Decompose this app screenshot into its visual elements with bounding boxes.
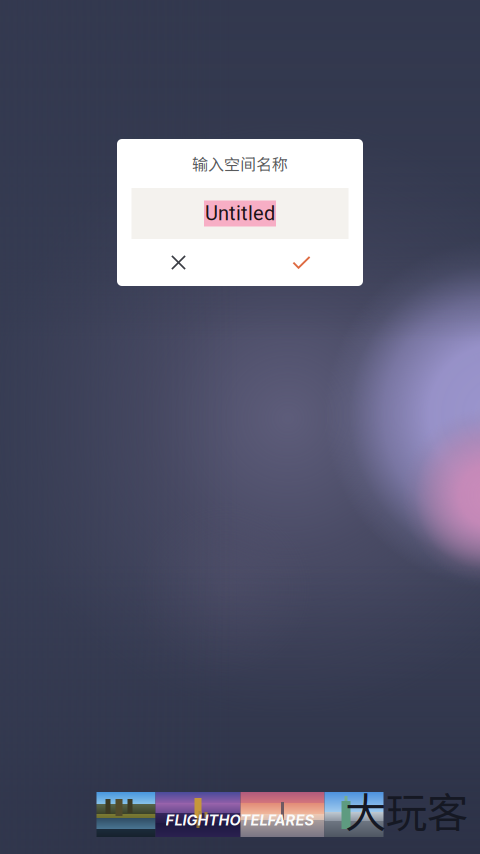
staticText: Untitled [205,202,275,225]
button[interactable]: Flight Hotel Fares advertisement [96,792,383,837]
staticText: 输入空间名称 [192,152,288,175]
button[interactable]: Confirm [240,239,363,286]
staticText: FLIGHTHOTELFARES [165,811,314,829]
staticText: 大玩客 [345,780,468,840]
button[interactable]: Cancel [117,239,240,286]
